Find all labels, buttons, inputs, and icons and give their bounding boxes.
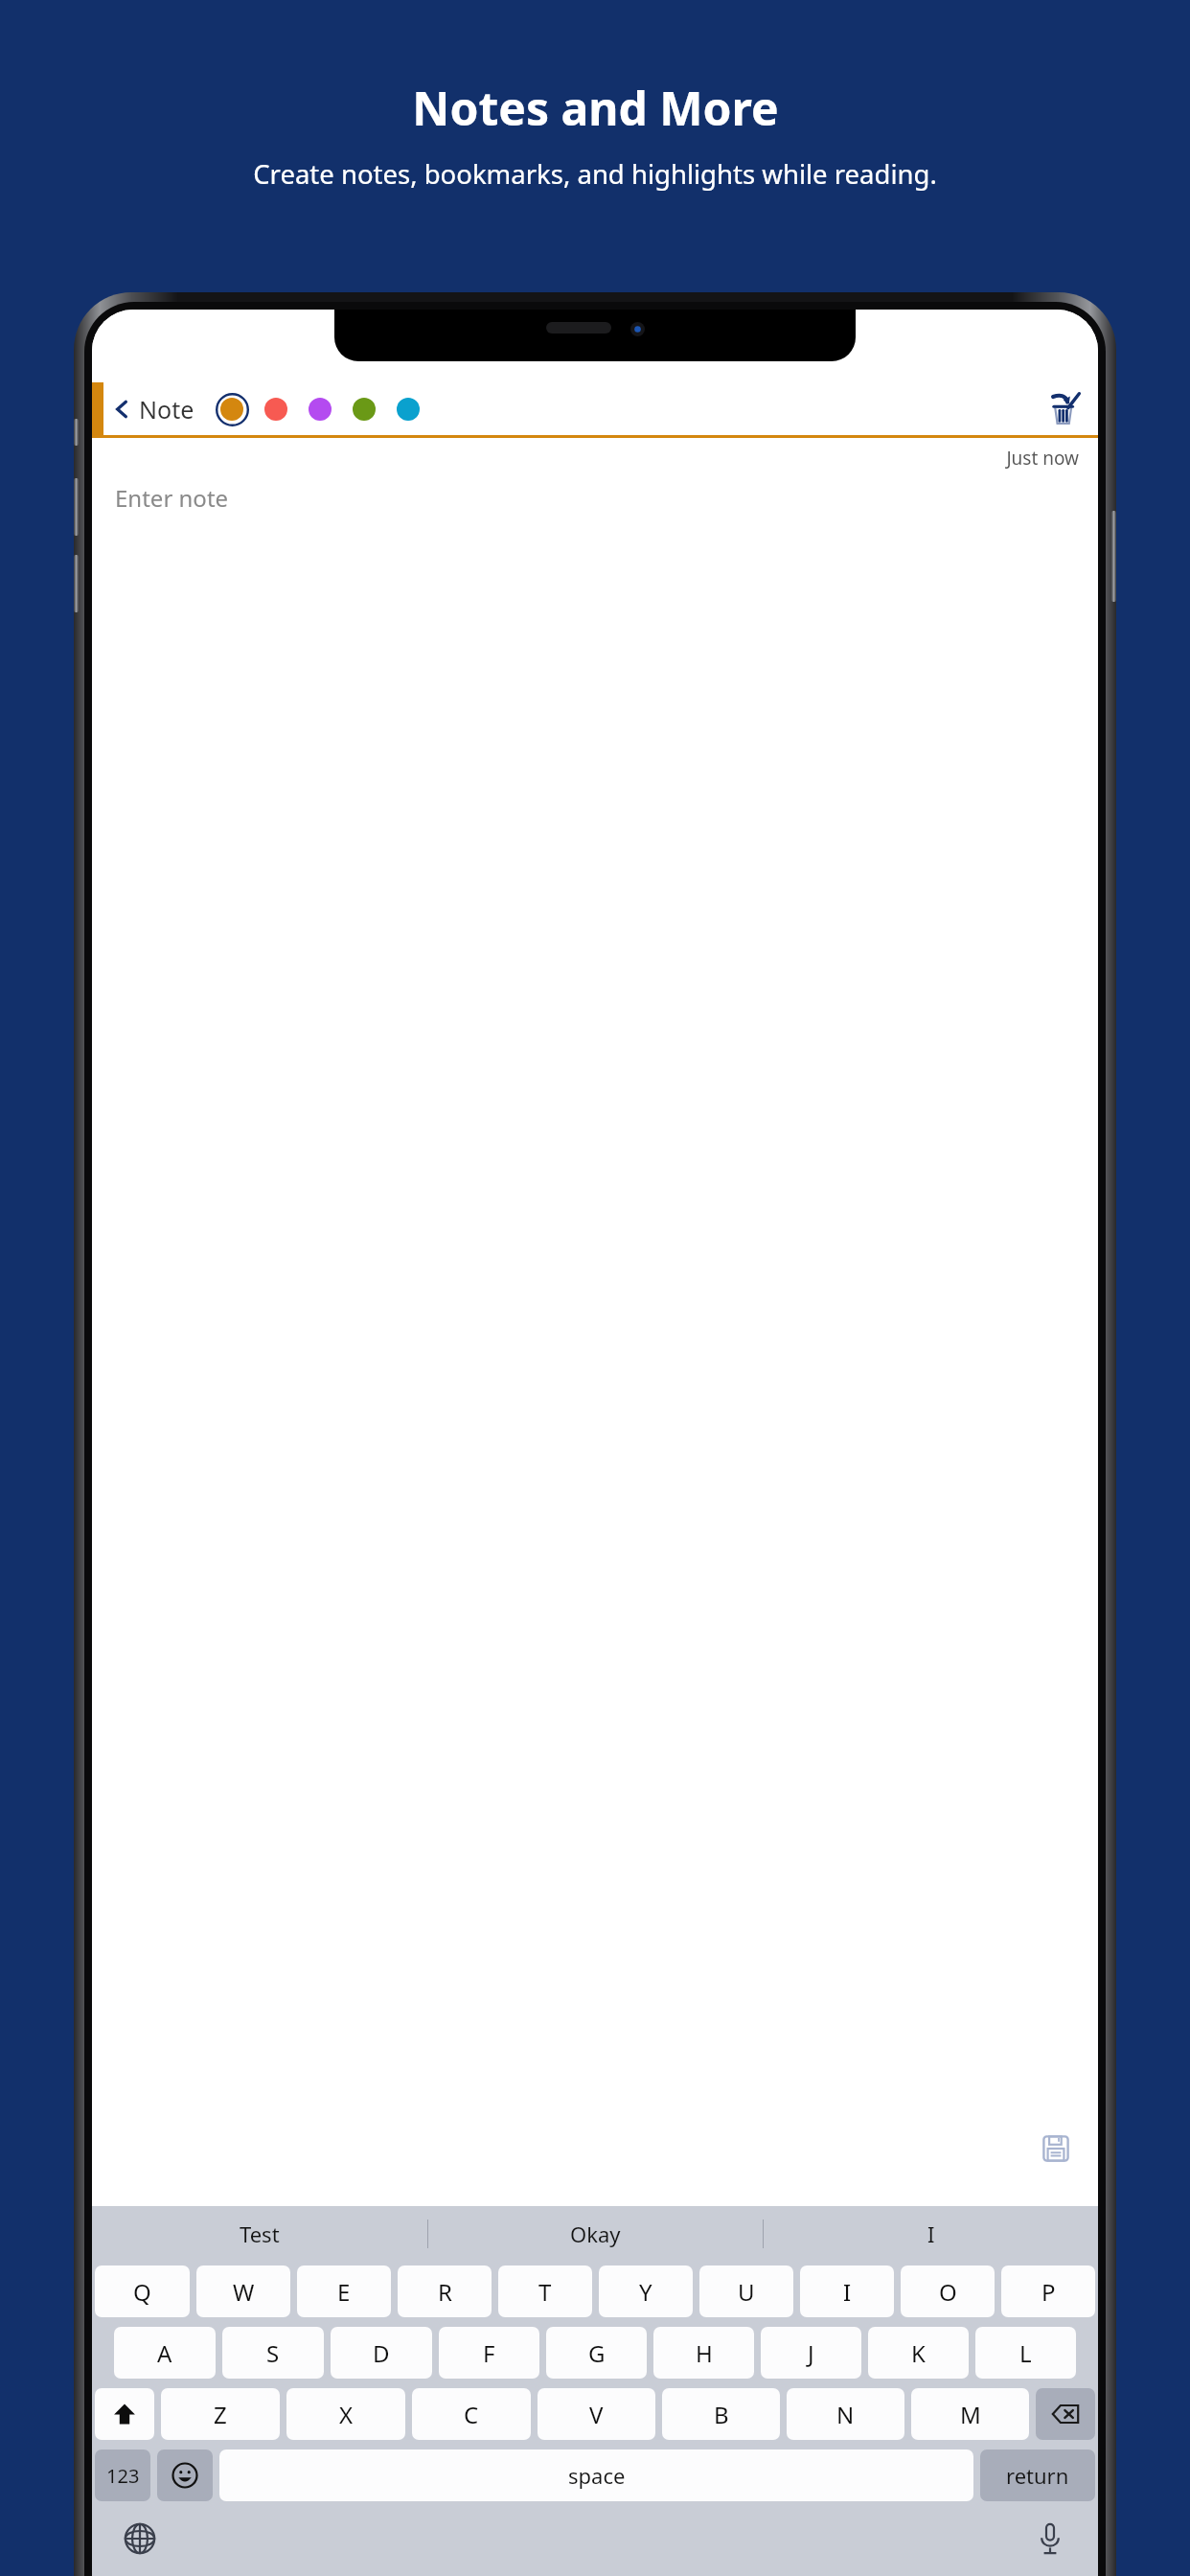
button[interactable]: M [911,2388,1029,2440]
staticText: M [960,2399,981,2430]
button[interactable]: Z [161,2388,280,2440]
staticText: P [1041,2276,1056,2308]
button[interactable]: return [980,2449,1095,2501]
staticText: E [337,2276,351,2308]
button[interactable]: G [546,2327,647,2379]
button[interactable]: D [331,2327,432,2379]
staticText: X [339,2399,354,2430]
button[interactable]: Highlight colour 3 [302,391,338,427]
staticText: Okay [570,2219,621,2248]
staticText: G [588,2337,606,2369]
button[interactable]: space [219,2449,973,2501]
button[interactable]: W [196,2265,290,2317]
staticText: Test [240,2219,280,2248]
button[interactable]: I [764,2206,1098,2262]
button[interactable]: T [498,2265,592,2317]
button[interactable]: J [761,2327,861,2379]
staticText: S [266,2337,280,2369]
staticText: Note [139,393,195,425]
button[interactable]: V [538,2388,655,2440]
button[interactable]: X [286,2388,405,2440]
staticText: V [589,2399,604,2430]
staticText: Just now [92,446,1079,471]
staticText: U [738,2276,755,2308]
button[interactable]: Delete note [1042,388,1085,430]
staticText: K [911,2337,926,2369]
button[interactable]: Backspace [1036,2388,1095,2440]
staticText: C [464,2399,479,2430]
button[interactable]: Q [95,2265,190,2317]
button[interactable]: O [901,2265,995,2317]
button[interactable]: S [222,2327,324,2379]
button[interactable]: Shift [95,2388,154,2440]
staticText: J [808,2337,814,2369]
staticText: Y [639,2276,652,2308]
button[interactable]: Highlight colour 5 [390,391,426,427]
staticText: Q [133,2276,151,2308]
staticText: I [843,2276,852,2308]
staticText: A [157,2337,172,2369]
button[interactable]: Highlight colour 1 [214,391,250,427]
button[interactable]: C [412,2388,531,2440]
staticText: Z [214,2399,227,2430]
button[interactable]: L [975,2327,1076,2379]
staticText: I [927,2219,935,2248]
staticText: D [373,2337,390,2369]
button[interactable]: Y [599,2265,693,2317]
button[interactable]: E [297,2265,391,2317]
staticText: space [568,2461,626,2490]
staticText: F [483,2337,495,2369]
button[interactable]: Highlight colour 2 [258,391,294,427]
staticText: O [939,2276,957,2308]
button[interactable]: Okay [428,2206,763,2262]
staticText: H [696,2337,713,2369]
button[interactable]: Emoji [157,2449,213,2501]
button[interactable]: I [800,2265,894,2317]
button[interactable]: Highlight colour 4 [346,391,382,427]
button[interactable]: Change keyboard [117,2516,163,2562]
staticText: T [538,2276,552,2308]
button[interactable]: Test [92,2206,427,2262]
staticText: Notes and More [412,77,779,139]
button[interactable]: U [699,2265,793,2317]
button[interactable]: P [1001,2265,1095,2317]
staticText: N [836,2399,855,2430]
button[interactable]: Dictate [1027,2516,1073,2562]
button[interactable]: A [114,2327,216,2379]
button[interactable]: K [868,2327,969,2379]
button[interactable]: N [787,2388,904,2440]
button[interactable]: H [653,2327,754,2379]
button[interactable]: Note [111,393,198,425]
button[interactable]: R [398,2265,492,2317]
staticText: W [233,2276,255,2308]
staticText: R [438,2276,452,2308]
button[interactable]: B [662,2388,780,2440]
staticText: B [714,2399,729,2430]
button[interactable]: F [439,2327,539,2379]
staticText: return [1006,2461,1069,2490]
button[interactable]: Enter note [115,482,229,514]
button[interactable]: Save note [1037,2129,1075,2168]
button[interactable]: 123 [95,2449,150,2501]
staticText: L [1019,2337,1032,2369]
staticText: 123 [106,2463,140,2489]
staticText: Create notes, bookmarks, and highlights … [253,156,937,192]
